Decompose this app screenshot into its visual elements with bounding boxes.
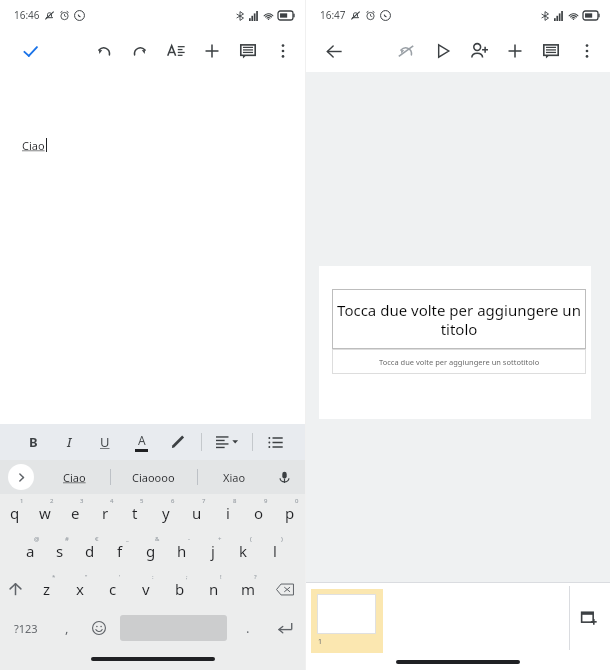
button[interactable]: Comments [232, 35, 264, 67]
button[interactable]: w [30, 494, 60, 532]
staticText: t [132, 503, 138, 523]
button[interactable]: Undo [390, 35, 422, 67]
button[interactable]: e [60, 494, 90, 532]
button[interactable]: Enter [265, 608, 305, 648]
staticText: r [102, 503, 109, 523]
button[interactable]: n [197, 570, 231, 608]
button[interactable]: x [63, 570, 96, 608]
staticText: q [10, 503, 20, 523]
staticText: e [71, 503, 80, 523]
button[interactable]: f [105, 532, 135, 570]
button[interactable]: Ciaoooo [112, 460, 194, 494]
button[interactable]: Voice input [271, 464, 297, 490]
button[interactable]: k [228, 532, 259, 570]
button[interactable]: Share [463, 35, 495, 67]
staticText: - [188, 535, 190, 543]
button[interactable]: I [54, 427, 84, 457]
staticText: Ciao [22, 138, 45, 153]
staticText: g [146, 541, 156, 561]
button[interactable]: s [45, 532, 75, 570]
button[interactable]: B [18, 427, 48, 457]
staticText: b [175, 579, 185, 599]
button[interactable]: v [129, 570, 163, 608]
staticText: 6 [171, 497, 175, 505]
button[interactable]: 1 [311, 589, 383, 653]
button[interactable]: t [120, 494, 150, 532]
button[interactable]: z [30, 570, 63, 608]
staticText: 16:47 [320, 8, 346, 22]
staticText: A [138, 432, 146, 448]
button[interactable]: Present [427, 35, 459, 67]
button[interactable]: . [231, 608, 265, 648]
staticText: + [218, 535, 222, 543]
button[interactable]: o [243, 494, 274, 532]
button[interactable]: l [259, 532, 290, 570]
button[interactable]: Redo [124, 35, 156, 67]
button[interactable]: Undo [88, 35, 120, 67]
button[interactable]: Done [14, 35, 46, 67]
button[interactable]: Text formatting [160, 35, 192, 67]
button[interactable]: a [15, 532, 45, 570]
button[interactable]: c [96, 570, 129, 608]
staticText: n [209, 579, 219, 599]
button[interactable]: u [181, 494, 212, 532]
button[interactable]: Highlight [163, 427, 193, 457]
button[interactable]: More options [267, 35, 299, 67]
staticText: u [192, 503, 202, 523]
staticText: Tocca due volte per aggiungere un sottot… [379, 357, 540, 367]
button[interactable]: m [231, 570, 265, 608]
button[interactable]: j [197, 532, 228, 570]
button[interactable]: Ciao [40, 460, 108, 494]
button[interactable]: q [0, 494, 30, 532]
staticText: h [177, 541, 187, 561]
staticText: * [52, 573, 56, 581]
button[interactable]: h [166, 532, 197, 570]
button[interactable]: Emoji [82, 608, 116, 648]
button[interactable]: b [163, 570, 197, 608]
button[interactable]: , [52, 608, 82, 648]
staticText: j [211, 541, 215, 561]
staticText: Tocca due volte per aggiungere un titolo [332, 300, 586, 339]
button[interactable]: Tocca due volte per aggiungere un titolo [332, 289, 586, 349]
staticText: 4 [110, 497, 114, 505]
button[interactable]: r [90, 494, 120, 532]
button[interactable]: Tocca due volte per aggiungere un sottot… [332, 349, 586, 374]
staticText: & [155, 535, 160, 543]
button[interactable]: Alignment [211, 427, 245, 457]
button[interactable]: Shift [0, 570, 30, 608]
button[interactable]: g [135, 532, 166, 570]
staticText: ) [281, 535, 283, 543]
staticText: p [285, 503, 295, 523]
staticText: 1 [20, 497, 24, 505]
button[interactable]: Expand suggestions [8, 464, 34, 490]
staticText: 5 [140, 497, 144, 505]
button[interactable]: Insert [499, 35, 531, 67]
button[interactable]: Text color [126, 427, 156, 457]
button[interactable]: y [150, 494, 181, 532]
button[interactable]: U [90, 427, 120, 457]
staticText: # [65, 535, 69, 543]
button[interactable]: Xiao [199, 460, 269, 494]
button[interactable]: Add slide [574, 603, 604, 633]
staticText: x [76, 579, 84, 599]
button[interactable]: List [260, 427, 290, 457]
staticText: _ [126, 535, 129, 543]
button[interactable]: Comments [535, 35, 567, 67]
button[interactable]: More options [571, 35, 603, 67]
button[interactable]: Tocca due volte per aggiungere un titolo [319, 266, 591, 419]
staticText: 9 [264, 497, 268, 505]
button[interactable]: Back [318, 35, 350, 67]
button[interactable]: ?123 [0, 608, 52, 648]
staticText: ?123 [14, 621, 38, 636]
staticText: ( [250, 535, 252, 543]
staticText: U [100, 433, 110, 451]
button[interactable]: Backspace [265, 570, 305, 608]
button[interactable]: p [274, 494, 305, 532]
staticText: 7 [202, 497, 206, 505]
staticText: Ciao [63, 470, 86, 485]
button[interactable]: i [212, 494, 243, 532]
button[interactable]: Insert [196, 35, 228, 67]
staticText: 3 [80, 497, 84, 505]
button[interactable]: d [75, 532, 105, 570]
